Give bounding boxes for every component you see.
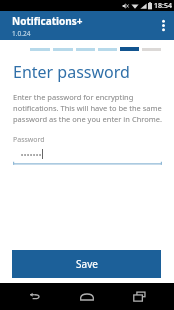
staticText: 18:54	[154, 1, 172, 11]
button[interactable]	[13, 149, 162, 162]
button[interactable]: More options	[152, 11, 174, 40]
button[interactable]: Save	[12, 250, 161, 278]
button[interactable]: Recent apps	[113, 283, 166, 310]
staticText: Enter password	[13, 61, 130, 83]
button[interactable]: Back	[8, 283, 60, 310]
staticText: Enter the password for encrypting notifi…	[13, 92, 162, 124]
staticText: Password	[13, 135, 45, 145]
staticText: Notifications+	[12, 14, 83, 28]
staticText: 1.0.24	[12, 29, 31, 38]
staticText: Save	[76, 257, 98, 271]
button[interactable]: Home	[60, 283, 113, 310]
